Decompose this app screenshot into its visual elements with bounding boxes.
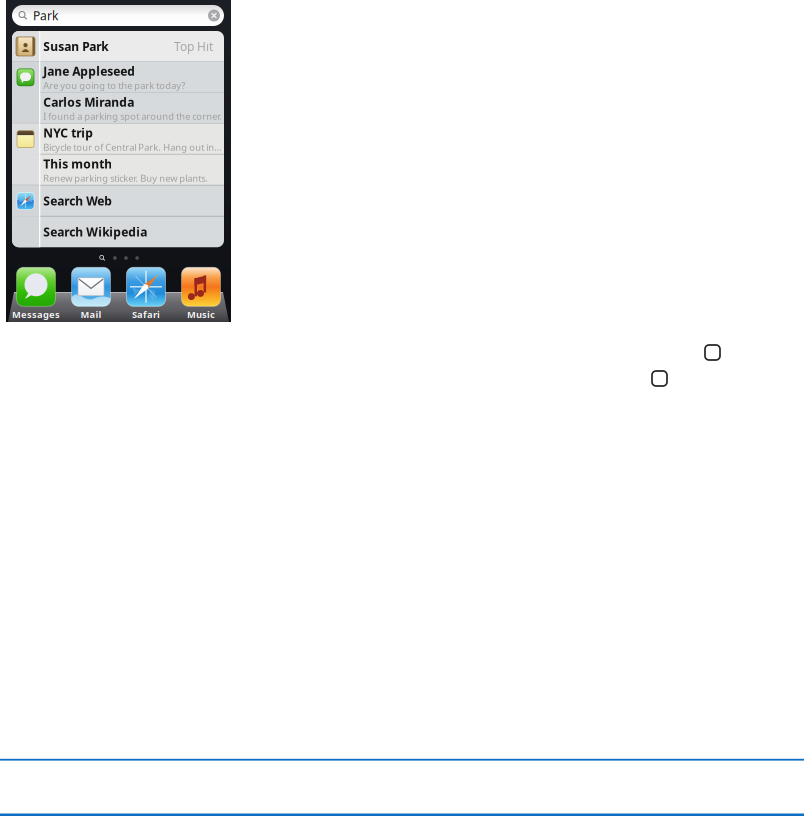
- staticText: Are you going to the park today?: [43, 79, 185, 91]
- staticText: Bicycle tour of Central Park. Hang out i…: [43, 141, 221, 153]
- button[interactable]: Safari: [126, 267, 165, 321]
- staticText: Top Hit: [174, 38, 213, 54]
- staticText: Jane Appleseed: [43, 63, 135, 79]
- button[interactable]: Home button: [705, 345, 720, 360]
- staticText: Search Wikipedia: [43, 224, 147, 240]
- button[interactable]: Music: [181, 267, 220, 321]
- staticText: Carlos Miranda: [43, 94, 134, 110]
- staticText: Mail: [80, 308, 101, 321]
- staticText: Park: [33, 7, 58, 23]
- staticText: Safari: [132, 308, 160, 321]
- button[interactable]: This month: [12, 155, 224, 185]
- staticText: Renew parking sticker. Buy new plants.: [43, 172, 208, 184]
- button[interactable]: Search Web: [12, 185, 224, 216]
- staticText: Susan Park: [43, 38, 108, 54]
- button[interactable]: NYC trip: [12, 124, 224, 155]
- staticText: Music: [187, 308, 215, 321]
- button[interactable]: Messages: [16, 267, 55, 321]
- staticText: This month: [43, 156, 112, 172]
- staticText: I found a parking spot around the corner…: [43, 110, 222, 122]
- staticText: Search Web: [43, 193, 112, 209]
- staticText: Messages: [12, 308, 60, 321]
- button[interactable]: Susan Park: [12, 31, 224, 62]
- button[interactable]: Mail: [71, 267, 110, 321]
- button[interactable]: Carlos Miranda: [12, 93, 224, 124]
- staticText: NYC trip: [43, 125, 93, 141]
- button[interactable]: Home button: [652, 371, 667, 386]
- button[interactable]: Search Wikipedia: [12, 216, 224, 247]
- button[interactable]: Jane Appleseed: [12, 62, 224, 93]
